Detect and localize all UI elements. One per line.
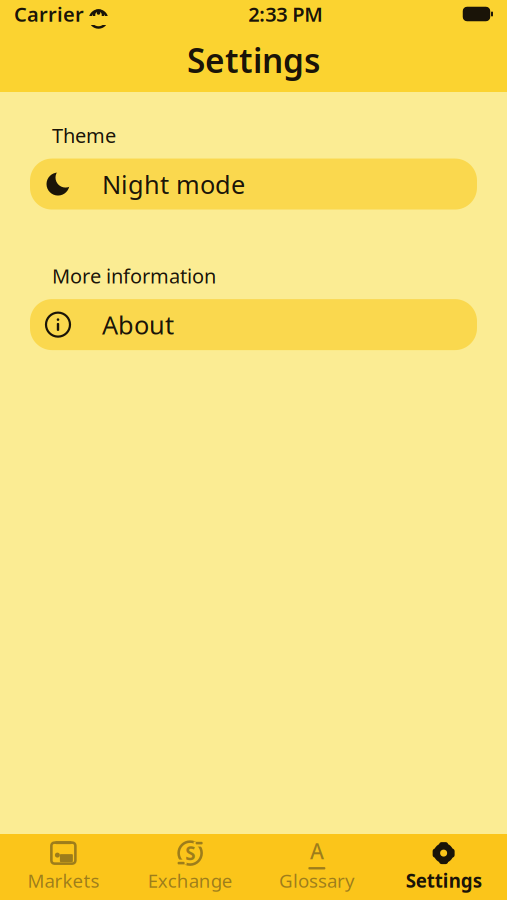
staticText: Settings <box>187 38 320 82</box>
staticText: Theme <box>52 122 116 149</box>
staticText: More information <box>52 263 216 289</box>
button[interactable]: About <box>30 299 477 350</box>
staticText: Glossary <box>279 868 355 893</box>
staticText: Carrier <box>14 1 84 27</box>
button[interactable]: Markets <box>0 834 127 900</box>
staticText: 2:33 PM <box>248 1 323 27</box>
button[interactable]: Night mode <box>30 159 477 210</box>
staticText: A <box>310 837 324 865</box>
staticText: Markets <box>27 868 99 893</box>
button[interactable]: S <box>127 834 254 900</box>
button[interactable]: A <box>253 834 380 900</box>
staticText: S <box>185 841 195 865</box>
staticText: Night mode <box>102 167 245 201</box>
staticText: Exchange <box>148 868 233 893</box>
staticText: About <box>102 308 174 341</box>
button[interactable]: Settings <box>380 834 507 900</box>
staticText: Settings <box>406 868 482 893</box>
